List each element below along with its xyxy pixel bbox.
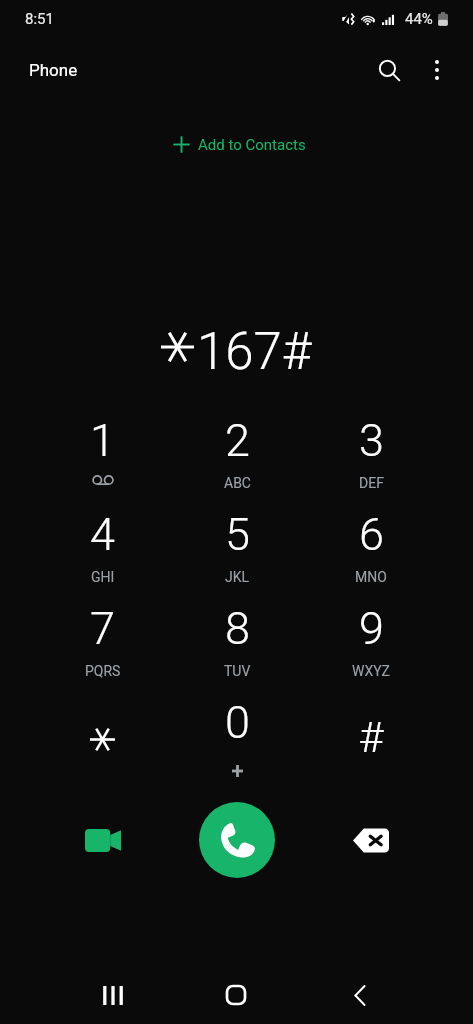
button[interactable]: Home [174, 963, 298, 1024]
staticText: Phone [29, 60, 78, 80]
button[interactable]: 6 [304, 492, 438, 586]
staticText: ABC [224, 475, 251, 491]
staticText: 9 [359, 602, 384, 655]
button[interactable]: Call [199, 802, 275, 878]
staticText: JKL [225, 569, 250, 585]
staticText: 8:51 [25, 10, 54, 28]
staticText: GHI [91, 569, 115, 585]
button[interactable]: 9 [304, 586, 438, 680]
staticText: PQRS [85, 663, 121, 679]
staticText: 4 [90, 508, 115, 561]
staticText: TUV [224, 663, 251, 679]
staticText: DEF [359, 475, 384, 491]
staticText: 5 [225, 508, 250, 561]
button[interactable]: 0 [170, 680, 304, 774]
button[interactable]: 5 [170, 492, 304, 586]
button[interactable]: Recents [51, 963, 174, 1024]
button[interactable] [35, 680, 170, 774]
button[interactable]: 4 [35, 492, 170, 586]
staticText: 44% [405, 10, 433, 28]
button[interactable]: 3 [304, 398, 438, 492]
button[interactable]: Add to Contacts [158, 127, 320, 162]
staticText: WXYZ [352, 663, 390, 679]
button[interactable]: # [304, 680, 438, 774]
button[interactable]: More options [413, 46, 461, 94]
button[interactable]: Backspace [343, 812, 399, 868]
staticText: # [358, 712, 384, 762]
button[interactable]: 2 [170, 398, 304, 492]
staticText: 0 [225, 696, 250, 749]
button[interactable]: Video call [75, 812, 131, 868]
button[interactable]: 1 [35, 398, 170, 492]
staticText: 7 [90, 602, 115, 655]
staticText: 3 [359, 414, 384, 467]
staticText: 167# [197, 322, 312, 382]
staticText: 1 [90, 414, 115, 467]
staticText: Add to Contacts [198, 136, 306, 154]
staticText: 6 [359, 508, 384, 561]
button[interactable]: Back [298, 963, 422, 1024]
button[interactable]: 8 [170, 586, 304, 680]
staticText: MNO [355, 569, 387, 585]
staticText: 2 [225, 414, 250, 467]
button[interactable]: Search [365, 46, 413, 94]
button[interactable]: 7 [35, 586, 170, 680]
staticText: 8 [225, 602, 250, 655]
